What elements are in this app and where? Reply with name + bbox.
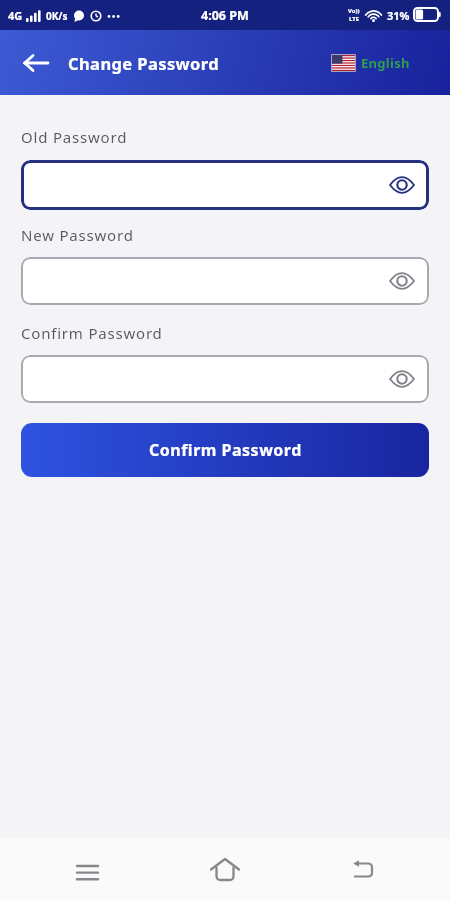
staticText: 31% [387,8,410,23]
button[interactable] [210,857,240,883]
staticText: Old Password [21,127,128,147]
button[interactable]: English [332,54,410,72]
staticText: Confirm Password [149,439,302,461]
button[interactable] [389,271,415,291]
button[interactable] [77,864,98,881]
staticText: 4G [8,8,23,23]
staticText: New Password [21,225,134,245]
staticText: 4:06 PM [201,7,249,24]
staticText: Change Password [68,52,220,74]
button[interactable] [389,175,415,195]
staticText: 0K/s [46,9,68,23]
button[interactable] [21,160,429,210]
button[interactable] [389,369,415,389]
staticText: Vo)) [348,7,360,15]
button[interactable] [21,355,429,403]
staticText: LTE [349,15,360,23]
button[interactable] [24,54,49,72]
button[interactable] [21,257,429,305]
staticText: English [361,54,410,72]
button[interactable]: Confirm Password [21,423,429,477]
staticText: Confirm Password [21,323,163,343]
button[interactable] [353,860,375,880]
